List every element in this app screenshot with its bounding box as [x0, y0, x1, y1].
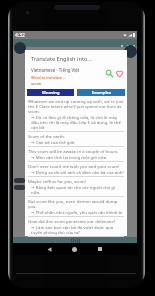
staticText: Maybe coffins for you, scum! — [28, 178, 86, 184]
staticText: → Dù có làm gì đi chăng nữa, lũ chó lè m… — [31, 114, 124, 130]
staticText: This scum will be awake in a couple of h… — [28, 148, 119, 154]
staticText: → Cặn bã của thế giới. — [31, 139, 76, 145]
staticText: → Làm sao bọn cặn bã đó vượt được qua tu… — [31, 224, 124, 235]
button[interactable]: Home — [62, 243, 87, 255]
button[interactable]: Search — [105, 69, 114, 78]
button[interactable]: Favorite — [115, 69, 124, 78]
staticText: → Đừng xa tôi với anh và đám cặn bã của … — [31, 169, 124, 175]
staticText: Whatever we end up coming up with, we're… — [28, 98, 124, 114]
button[interactable]: Meaning — [27, 89, 74, 96]
button[interactable]: Back — [37, 243, 62, 255]
staticText: Meaning — [42, 90, 60, 95]
staticText: Scum of the earth. — [28, 133, 66, 139]
staticText: How did this scum penetrate our defenses… — [28, 218, 116, 224]
staticText: Don't ever count me with you and your sc… — [28, 163, 120, 169]
staticText: scum — [31, 81, 42, 87]
staticText: Examples — [92, 90, 111, 95]
staticText: Word to translate ... — [31, 75, 67, 80]
staticText: 4:32 — [15, 32, 25, 39]
staticText: Translate English into... — [31, 55, 92, 63]
staticText: Vietnamese - Tiếng Việt — [31, 67, 80, 73]
staticText: → Phế nhân như người, yêu quái cản khinh… — [31, 209, 123, 215]
staticText: → Món cặn tỉnh lại trong một giờ nữa. — [31, 154, 108, 160]
button[interactable]: Examples — [77, 89, 125, 96]
staticText: → Rằng ảnh quan tài cho các người chó gì… — [31, 184, 124, 195]
staticText: But scum like you, even demon would dump… — [28, 198, 124, 209]
button[interactable]: Recents — [87, 243, 112, 255]
